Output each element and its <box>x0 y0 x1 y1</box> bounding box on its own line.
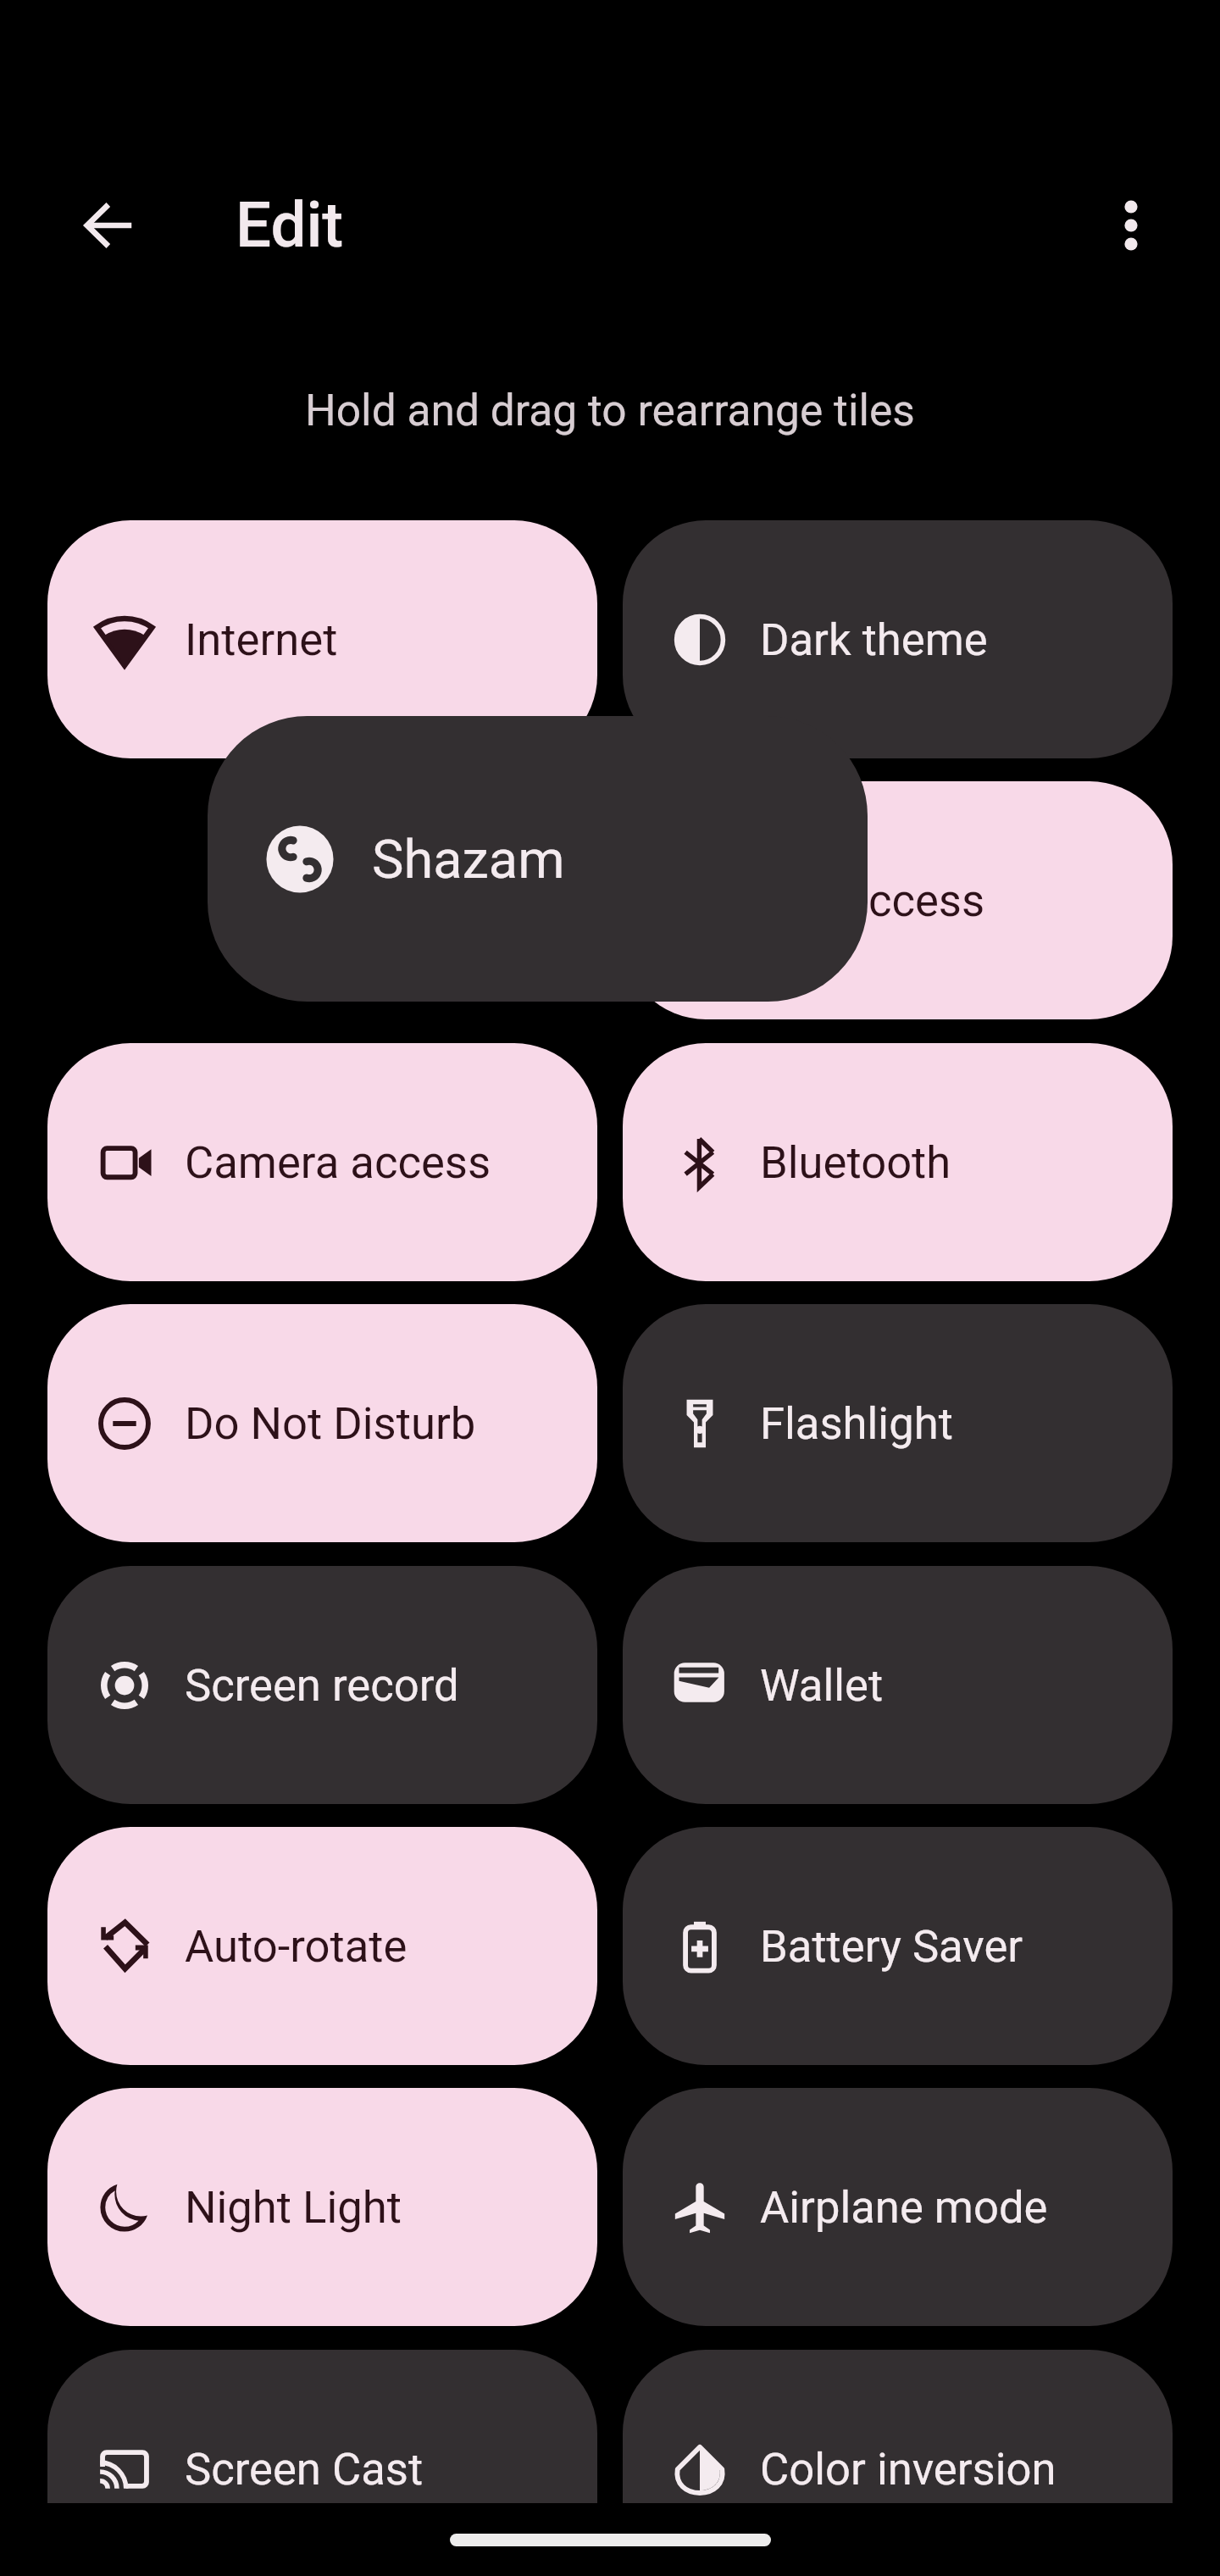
staticText: Hold and drag to rearrange tiles <box>305 385 915 436</box>
staticText: Airplane mode <box>760 2181 1048 2234</box>
button[interactable]: Screen record <box>47 1566 597 1804</box>
staticText: Shazam <box>372 828 565 891</box>
button[interactable]: Do Not Disturb <box>47 1304 597 1542</box>
button[interactable]: Internet <box>47 520 597 758</box>
staticText: Night Light <box>185 2181 402 2234</box>
button[interactable]: Shazam <box>208 716 868 1002</box>
staticText: Auto-rotate <box>185 1920 408 1973</box>
staticText: Do Not Disturb <box>185 1397 476 1450</box>
button[interactable]: Dark theme <box>623 520 1173 758</box>
button[interactable]: Bluetooth <box>623 1043 1173 1281</box>
button[interactable]: Auto-rotate <box>47 1827 597 2065</box>
staticText: Edit <box>236 188 344 262</box>
button[interactable]: Night Light <box>47 2088 597 2326</box>
button[interactable]: Mic access <box>623 781 1173 1019</box>
button[interactable]: Screen Cast <box>47 2350 597 2576</box>
button[interactable]: Battery Saver <box>623 1827 1173 2065</box>
staticText: Screen Cast <box>185 2443 424 2495</box>
button[interactable]: Wallet <box>623 1566 1173 1804</box>
staticText: Mic access <box>760 874 985 927</box>
staticText: Dark theme <box>760 613 988 666</box>
button[interactable]: Color inversion <box>623 2350 1173 2576</box>
staticText: Battery Saver <box>760 1920 1023 1973</box>
staticText: Bluetooth <box>760 1136 951 1189</box>
staticText: Internet <box>185 613 338 666</box>
staticText: Wallet <box>760 1659 884 1712</box>
button[interactable]: Back <box>63 179 156 272</box>
button[interactable]: Camera access <box>47 1043 597 1281</box>
button[interactable]: More options <box>1084 179 1178 272</box>
staticText: Camera access <box>185 1136 491 1189</box>
button[interactable]: Airplane mode <box>623 2088 1173 2326</box>
staticText: Flashlight <box>760 1397 953 1450</box>
staticText: Screen record <box>185 1659 459 1712</box>
staticText: Color inversion <box>760 2443 1056 2495</box>
button[interactable]: Flashlight <box>623 1304 1173 1542</box>
